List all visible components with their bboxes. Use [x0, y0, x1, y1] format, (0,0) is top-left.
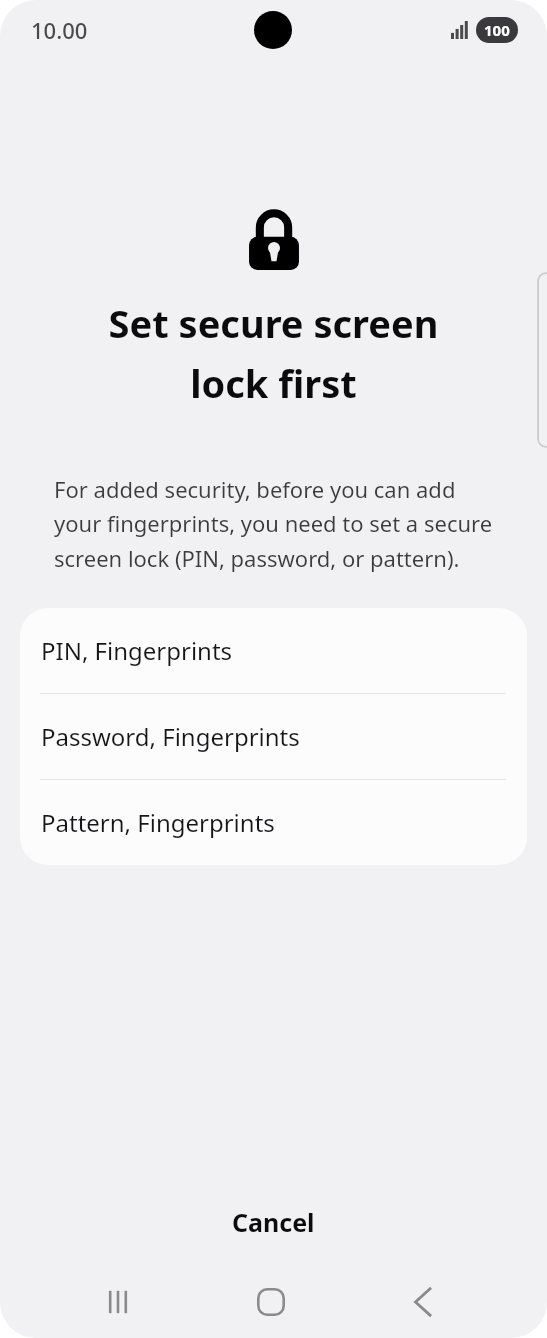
staticText: Cancel — [232, 1205, 315, 1239]
button[interactable]: Home — [241, 1272, 301, 1332]
staticText: Password, Fingerprints — [41, 720, 300, 753]
staticText: For added security, before you can add y… — [54, 474, 499, 574]
staticText: PIN, Fingerprints — [41, 634, 233, 667]
staticText: 100 — [484, 20, 510, 40]
button[interactable]: Pattern, Fingerprints — [20, 780, 527, 865]
button[interactable]: Recent apps — [88, 1272, 148, 1332]
button[interactable]: PIN, Fingerprints — [20, 608, 527, 693]
staticText: Set secure screen lock first — [70, 297, 477, 409]
button[interactable]: Back — [393, 1272, 453, 1332]
button[interactable]: Password, Fingerprints — [20, 694, 527, 779]
staticText: 10.00 — [31, 15, 88, 45]
button[interactable]: Cancel — [0, 1186, 547, 1258]
staticText: Pattern, Fingerprints — [41, 806, 275, 839]
